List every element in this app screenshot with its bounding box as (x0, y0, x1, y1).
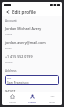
staticText: +1 415 552 0199 (5, 54, 33, 59)
staticText: Address (5, 69, 17, 73)
button[interactable]: Back (4, 8, 11, 15)
staticText: More (49, 100, 55, 103)
staticText: 94107 (5, 89, 16, 92)
button[interactable]: +1 415 552 0199 (5, 53, 59, 67)
staticText: Account (5, 19, 17, 23)
staticText: San Francisco (7, 80, 29, 85)
staticText: Name (5, 32, 13, 35)
staticText: Phone (5, 60, 13, 63)
button[interactable]: City (5, 75, 59, 85)
button[interactable]: More (42, 92, 62, 105)
staticText: Email (5, 46, 12, 49)
staticText: jordan.avery@mail.com (5, 40, 46, 45)
button[interactable]: jordan.avery@mail.com (5, 39, 59, 53)
staticText: Edit profile (12, 9, 36, 15)
staticText: City (7, 76, 12, 79)
button[interactable]: 94107 (5, 88, 59, 92)
staticText: Home (9, 100, 16, 103)
button[interactable]: Profile (22, 92, 42, 105)
staticText: Profile (28, 100, 36, 103)
button[interactable]: Home (2, 92, 22, 105)
button[interactable]: Jordan Michael Avery (5, 25, 59, 39)
staticText: Jordan Michael Avery (5, 26, 42, 31)
